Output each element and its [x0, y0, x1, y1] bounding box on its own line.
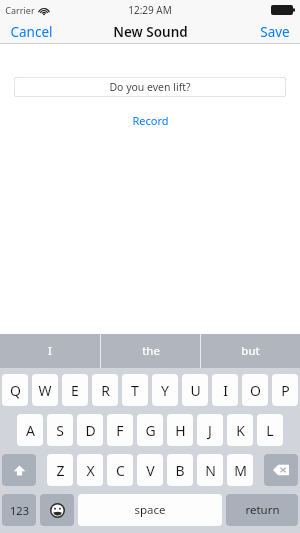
button[interactable]: Emoji — [40, 494, 74, 526]
staticText: L — [266, 421, 274, 440]
button[interactable]: space — [78, 494, 222, 526]
button[interactable]: M — [227, 454, 253, 486]
button[interactable]: T — [122, 374, 148, 406]
button[interactable]: X — [77, 454, 103, 486]
button[interactable]: N — [197, 454, 223, 486]
button[interactable]: F — [107, 414, 133, 446]
staticText: O — [250, 381, 261, 400]
button[interactable]: S — [47, 414, 73, 446]
button[interactable]: Z — [47, 454, 73, 486]
staticText: I — [48, 343, 52, 359]
button[interactable]: I — [212, 374, 238, 406]
staticText: M — [234, 461, 247, 480]
button[interactable]: the — [101, 334, 200, 368]
button[interactable]: D — [77, 414, 103, 446]
staticText: R — [101, 381, 110, 400]
staticText: I — [223, 381, 228, 400]
button[interactable]: C — [107, 454, 133, 486]
staticText: V — [146, 461, 155, 480]
button[interactable]: P — [272, 374, 298, 406]
staticText: F — [116, 421, 124, 440]
staticText: return — [245, 502, 280, 518]
staticText: Y — [161, 381, 169, 400]
button[interactable]: B — [167, 454, 193, 486]
staticText: P — [281, 381, 290, 400]
staticText: W — [38, 381, 52, 400]
button[interactable]: Cancel — [0, 20, 63, 44]
button[interactable]: J — [197, 414, 223, 446]
button[interactable]: W — [32, 374, 58, 406]
staticText: the — [142, 343, 160, 359]
staticText: Carrier — [5, 4, 35, 16]
button[interactable]: I — [0, 334, 100, 368]
staticText: K — [236, 421, 245, 440]
staticText: Do you even lift? — [109, 80, 191, 94]
staticText: New Sound — [113, 23, 188, 41]
staticText: 12:29 AM — [128, 3, 172, 17]
button[interactable]: Q — [2, 374, 28, 406]
button[interactable]: but — [201, 334, 300, 368]
staticText: H — [175, 421, 186, 440]
staticText: Save — [260, 23, 290, 41]
button[interactable]: Backspace — [264, 454, 298, 486]
staticText: J — [208, 421, 212, 440]
staticText: N — [205, 461, 216, 480]
staticText: but — [241, 343, 260, 359]
button[interactable]: Record — [122, 110, 179, 131]
button[interactable]: Y — [152, 374, 178, 406]
staticText: T — [131, 381, 139, 400]
button[interactable]: A — [17, 414, 43, 446]
staticText: 123 — [10, 503, 29, 518]
staticText: S — [56, 421, 64, 440]
staticText: space — [134, 502, 166, 518]
button[interactable]: E — [62, 374, 88, 406]
button[interactable]: H — [167, 414, 193, 446]
staticText: B — [175, 461, 185, 480]
button[interactable]: G — [137, 414, 163, 446]
button[interactable]: return — [226, 494, 298, 526]
button[interactable]: 123 — [2, 494, 36, 526]
staticText: Cancel — [10, 23, 53, 41]
staticText: X — [86, 461, 95, 480]
button[interactable]: U — [182, 374, 208, 406]
button[interactable]: L — [257, 414, 283, 446]
staticText: G — [145, 421, 156, 440]
staticText: Record — [132, 113, 169, 128]
staticText: Q — [10, 381, 21, 400]
staticText: U — [190, 381, 201, 400]
button[interactable]: O — [242, 374, 268, 406]
staticText: C — [116, 461, 125, 480]
button[interactable]: V — [137, 454, 163, 486]
button[interactable]: R — [92, 374, 118, 406]
button[interactable]: Save — [250, 20, 300, 44]
staticText: E — [71, 381, 79, 400]
button[interactable]: Shift — [2, 454, 36, 486]
staticText: Z — [56, 461, 65, 480]
staticText: D — [85, 421, 96, 440]
staticText: A — [26, 421, 35, 440]
button[interactable]: Do you even lift? — [14, 77, 286, 97]
button[interactable]: K — [227, 414, 253, 446]
